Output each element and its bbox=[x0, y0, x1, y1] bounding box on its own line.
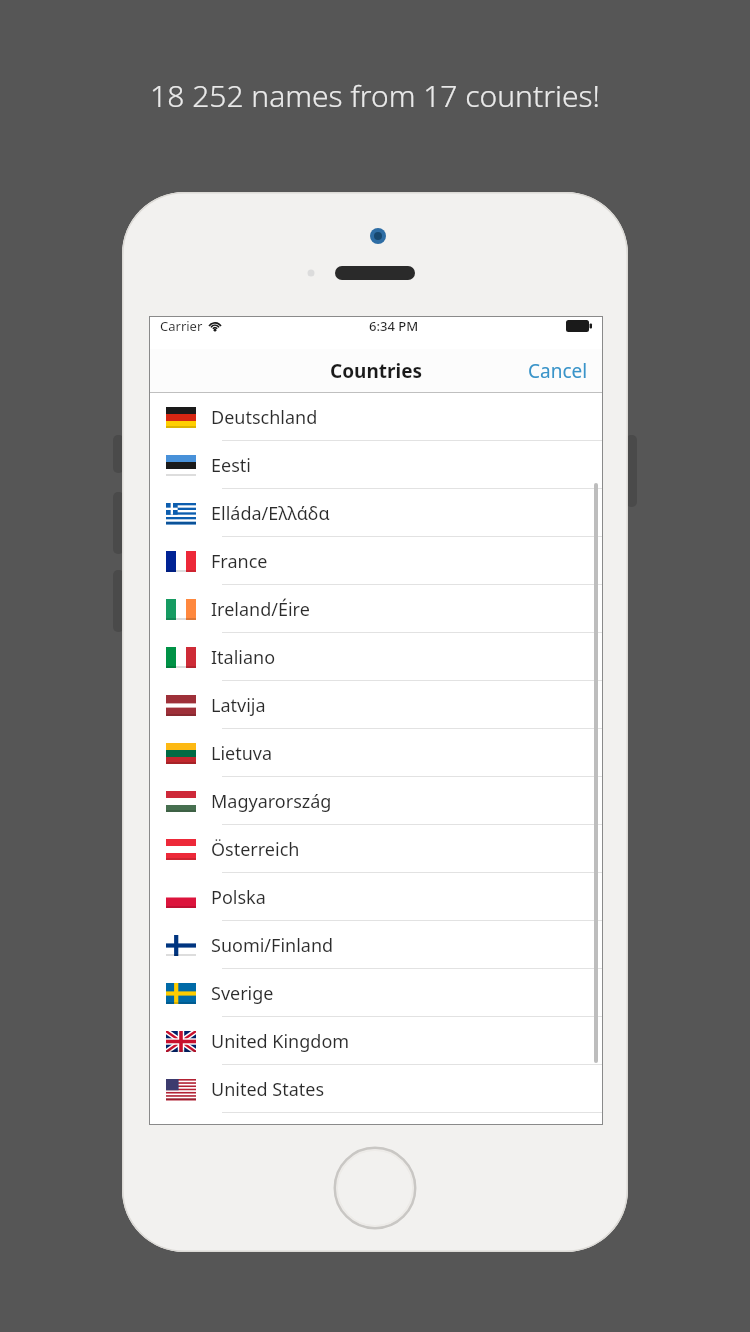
staticText: Cancel bbox=[528, 358, 588, 384]
button[interactable]: Österreich bbox=[150, 825, 602, 873]
staticText: Elláda/Ελλάδα bbox=[211, 501, 330, 526]
staticText: Carrier bbox=[160, 317, 203, 335]
button[interactable]: Polska bbox=[150, 873, 602, 921]
button[interactable]: Cancel bbox=[514, 350, 602, 392]
button[interactable]: Deutschland bbox=[150, 393, 602, 441]
staticText: Polska bbox=[211, 885, 266, 910]
staticText: 6:34 PM bbox=[369, 317, 419, 335]
staticText: Magyarország bbox=[211, 789, 332, 814]
button[interactable]: Sverige bbox=[150, 969, 602, 1017]
staticText: Latvija bbox=[211, 693, 266, 718]
button[interactable]: Magyarország bbox=[150, 777, 602, 825]
staticText: Italiano bbox=[211, 645, 276, 670]
button[interactable]: Elláda/Ελλάδα bbox=[150, 489, 602, 537]
button[interactable]: Eesti bbox=[150, 441, 602, 489]
staticText: 18 252 names from 17 countries! bbox=[150, 75, 600, 116]
staticText: Lietuva bbox=[211, 741, 273, 766]
staticText: United States bbox=[211, 1077, 325, 1102]
button[interactable]: France bbox=[150, 537, 602, 585]
staticText: Countries bbox=[330, 358, 423, 384]
staticText: United Kingdom bbox=[211, 1029, 350, 1054]
staticText: Sverige bbox=[211, 981, 274, 1006]
staticText: Ireland/Éire bbox=[211, 597, 310, 622]
button[interactable]: United States bbox=[150, 1065, 602, 1113]
button[interactable]: Latvija bbox=[150, 681, 602, 729]
button[interactable]: Suomi/Finland bbox=[150, 921, 602, 969]
button[interactable]: United Kingdom bbox=[150, 1017, 602, 1065]
staticText: Suomi/Finland bbox=[211, 933, 334, 958]
button[interactable]: Ireland/Éire bbox=[150, 585, 602, 633]
button[interactable]: Lietuva bbox=[150, 729, 602, 777]
staticText: Eesti bbox=[211, 453, 251, 478]
button[interactable]: Italiano bbox=[150, 633, 602, 681]
staticText: France bbox=[211, 549, 268, 574]
staticText: Österreich bbox=[211, 837, 300, 862]
staticText: Deutschland bbox=[211, 405, 318, 430]
